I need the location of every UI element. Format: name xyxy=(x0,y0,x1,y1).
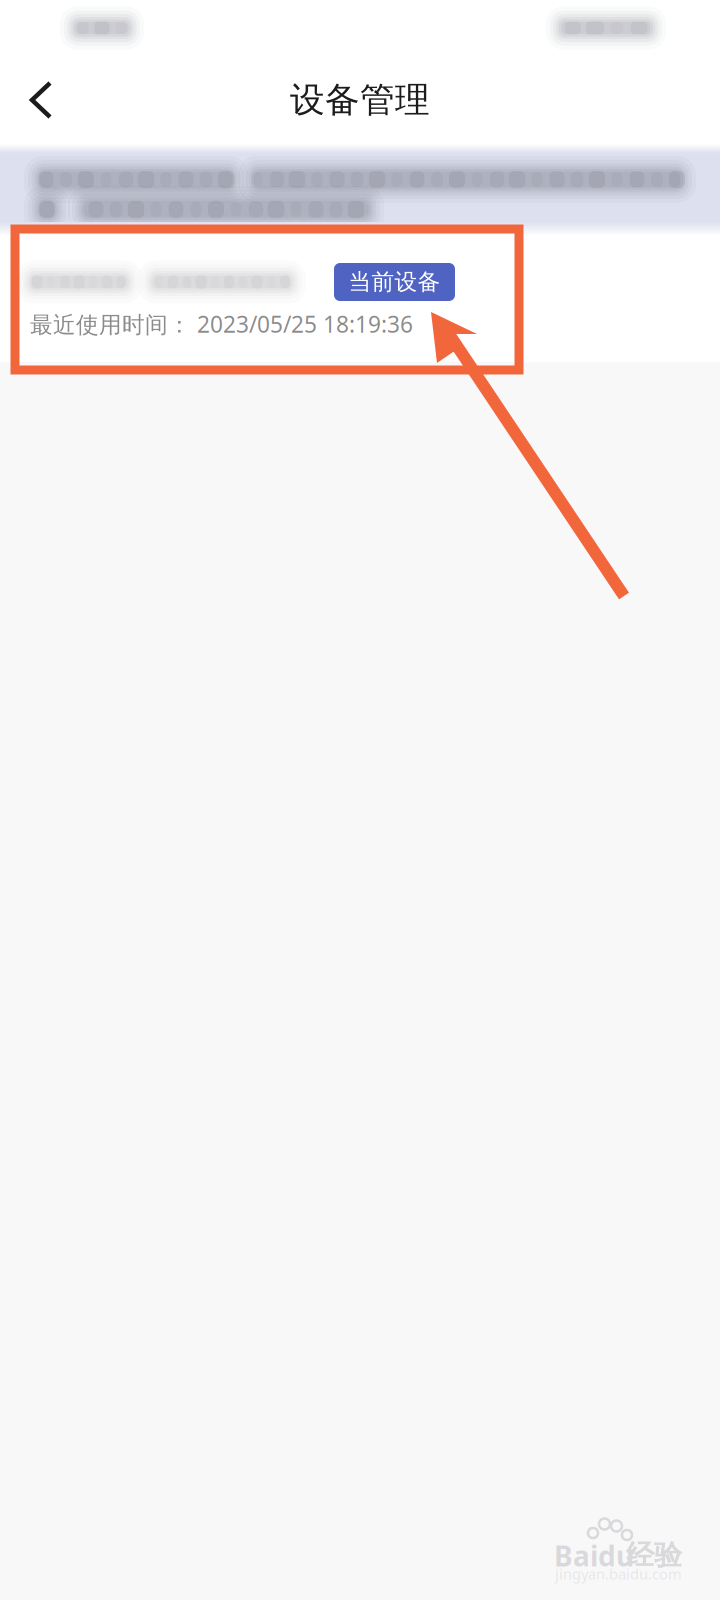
staticText: Baidu xyxy=(554,1537,634,1574)
button[interactable]: 返回 xyxy=(0,60,74,140)
staticText: 设备管理 xyxy=(290,79,430,121)
staticText: 最近使用时间： 2023/05/25 18:19:36 xyxy=(30,309,413,339)
staticText: jingyan.baidu.com xyxy=(555,1564,682,1583)
staticText: 经验 xyxy=(626,1538,682,1572)
button[interactable]: 当前设备 xyxy=(334,263,455,301)
staticText: 当前设备 xyxy=(348,268,440,296)
